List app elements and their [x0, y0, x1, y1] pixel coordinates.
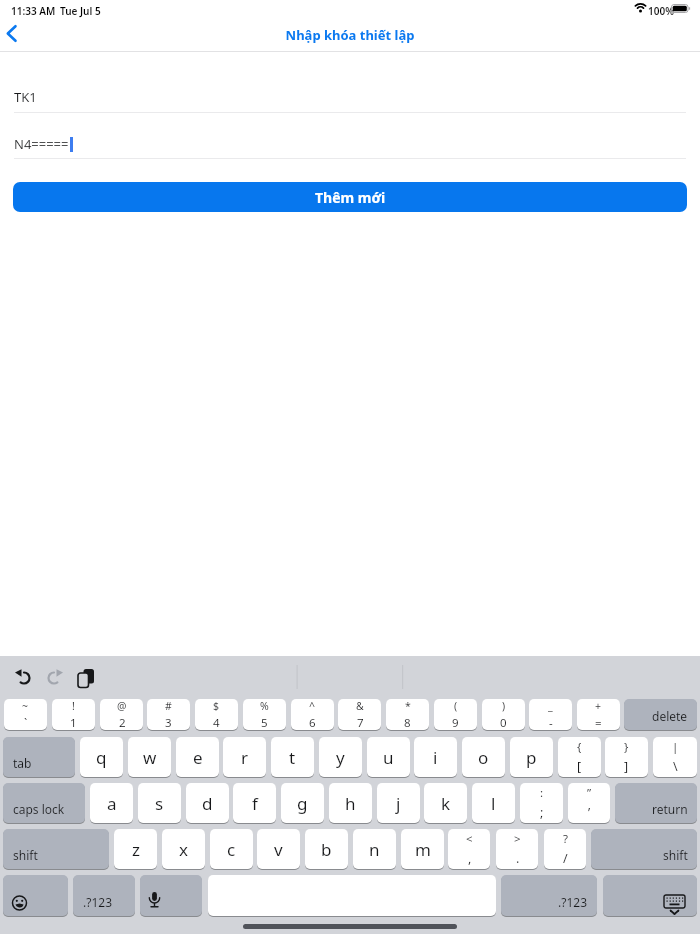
staticText: ^: [309, 699, 316, 713]
button[interactable]: s: [138, 783, 181, 823]
button[interactable]: return: [615, 783, 697, 823]
button[interactable]: &: [338, 699, 381, 730]
button[interactable]: ^: [291, 699, 334, 730]
staticText: .: [516, 850, 520, 867]
button[interactable]: [6, 25, 18, 42]
button[interactable]: g: [281, 783, 324, 823]
staticText: h: [345, 792, 356, 815]
staticText: }: [624, 739, 629, 755]
button[interactable]: t: [271, 737, 314, 777]
button[interactable]: p: [510, 737, 553, 777]
staticText: 11:33 AM: [11, 4, 56, 18]
button[interactable]: (: [434, 699, 477, 730]
staticText: <: [466, 831, 473, 847]
button[interactable]: m: [401, 829, 444, 869]
staticText: [: [577, 758, 582, 775]
button[interactable]: q: [80, 737, 123, 777]
staticText: 6: [309, 715, 316, 730]
staticText: $: [213, 699, 220, 713]
staticText: e: [193, 746, 203, 769]
button[interactable]: w: [128, 737, 171, 777]
button[interactable]: j: [377, 783, 420, 823]
button[interactable]: >: [496, 829, 538, 869]
button[interactable]: n: [353, 829, 396, 869]
button[interactable]: u: [367, 737, 410, 777]
staticText: :: [540, 785, 544, 801]
button[interactable]: [3, 875, 68, 916]
button[interactable]: #: [147, 699, 190, 730]
staticText: Tue Jul 5: [60, 4, 101, 18]
staticText: shift: [13, 847, 38, 863]
staticText: k: [441, 792, 451, 815]
button[interactable]: ”: [568, 783, 610, 823]
staticText: l: [491, 792, 496, 815]
button[interactable]: caps lock: [3, 783, 85, 823]
button[interactable]: ?: [544, 829, 586, 869]
staticText: =: [595, 715, 602, 730]
button[interactable]: h: [329, 783, 372, 823]
button[interactable]: i: [414, 737, 457, 777]
button[interactable]: x: [162, 829, 205, 869]
button[interactable]: a: [90, 783, 133, 823]
button[interactable]: ): [482, 699, 525, 730]
staticText: a: [107, 792, 117, 815]
button[interactable]: o: [462, 737, 505, 777]
button[interactable]: shift: [591, 829, 697, 869]
staticText: u: [383, 746, 394, 769]
staticText: %: [260, 699, 269, 713]
staticText: p: [526, 746, 537, 769]
button[interactable]: .?123: [501, 875, 597, 916]
button[interactable]: :: [520, 783, 563, 823]
button[interactable]: shift: [3, 829, 109, 869]
staticText: caps lock: [13, 801, 65, 817]
button[interactable]: y: [319, 737, 362, 777]
button[interactable]: r: [223, 737, 266, 777]
button[interactable]: l: [472, 783, 515, 823]
staticText: y: [336, 746, 345, 769]
button[interactable]: *: [386, 699, 429, 730]
button[interactable]: v: [257, 829, 300, 869]
button[interactable]: z: [114, 829, 157, 869]
staticText: ~: [22, 699, 29, 713]
staticText: >: [514, 831, 521, 847]
button[interactable]: @: [100, 699, 143, 730]
button[interactable]: [603, 875, 697, 916]
button[interactable]: [140, 875, 202, 916]
button[interactable]: delete: [624, 699, 697, 730]
staticText: r: [241, 746, 249, 769]
staticText: s: [155, 792, 164, 815]
staticText: 0: [500, 715, 507, 730]
button[interactable]: !: [52, 699, 95, 730]
button[interactable]: b: [305, 829, 348, 869]
button[interactable]: _: [529, 699, 572, 730]
staticText: 2: [119, 715, 126, 730]
staticText: Nhập khóa thiết lập: [0, 26, 700, 44]
staticText: 4: [213, 715, 220, 730]
button[interactable]: k: [424, 783, 467, 823]
staticText: ;: [540, 804, 544, 821]
button[interactable]: |: [653, 737, 697, 777]
staticText: |: [672, 739, 679, 755]
button[interactable]: }: [605, 737, 648, 777]
button[interactable]: <: [448, 829, 490, 869]
staticText: n: [369, 838, 380, 861]
staticText: d: [202, 792, 213, 815]
button[interactable]: Thêm mới: [13, 182, 687, 212]
button[interactable]: e: [176, 737, 219, 777]
button[interactable]: $: [195, 699, 238, 730]
button[interactable]: tab: [3, 737, 75, 777]
button[interactable]: +: [577, 699, 620, 730]
button[interactable]: f: [233, 783, 276, 823]
staticText: 1: [70, 715, 77, 730]
button[interactable]: c: [210, 829, 253, 869]
staticText: t: [289, 746, 296, 769]
button[interactable]: d: [186, 783, 229, 823]
staticText: !: [72, 699, 75, 713]
staticText: o: [478, 746, 489, 769]
button[interactable]: ~: [4, 699, 47, 730]
staticText: Thêm mới: [315, 188, 386, 207]
button[interactable]: {: [558, 737, 601, 777]
button[interactable]: %: [243, 699, 286, 730]
button[interactable]: .?123: [73, 875, 135, 916]
